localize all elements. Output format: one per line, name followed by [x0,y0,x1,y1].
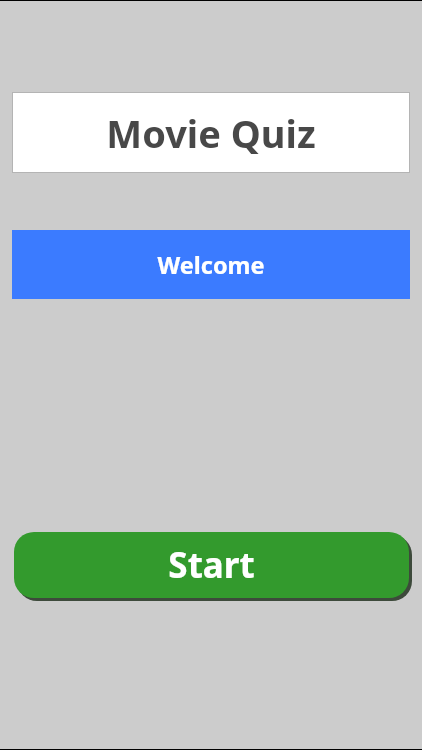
button[interactable]: Start [14,532,409,598]
staticText: Movie Quiz [106,107,316,159]
button[interactable]: Welcome [12,230,410,299]
staticText: Welcome [157,249,265,281]
staticText: Start [168,541,255,589]
